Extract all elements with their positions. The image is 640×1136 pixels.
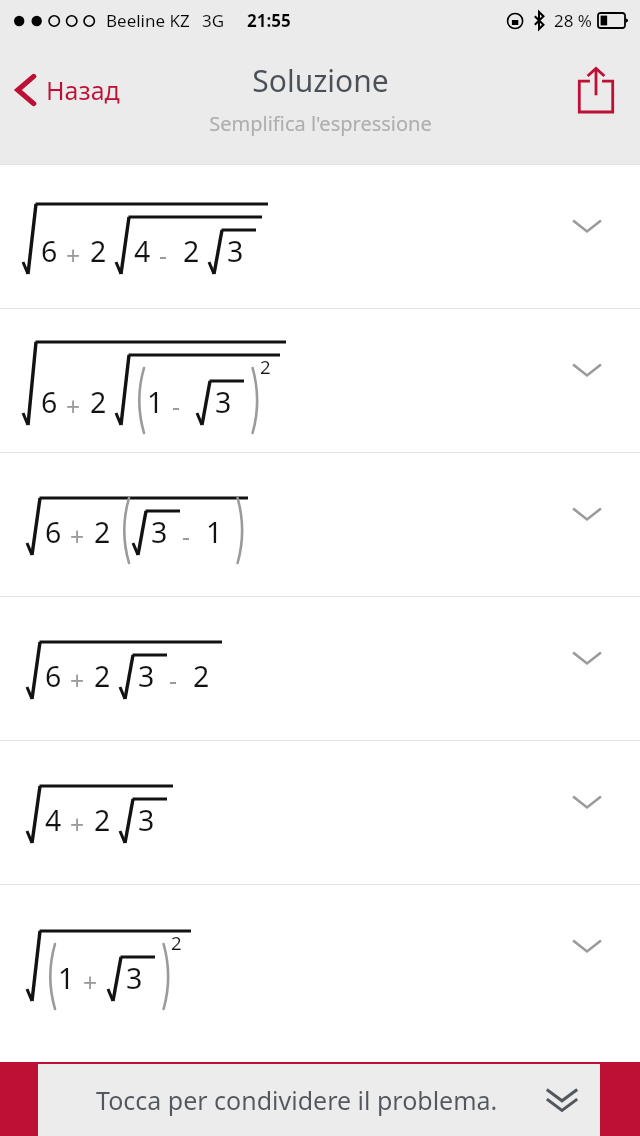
staticText: 21:55 [247,9,291,32]
staticText: + [66,238,81,272]
staticText: 6 [41,383,58,422]
staticText: + [66,389,81,423]
staticText: 6 [41,232,58,271]
button[interactable]: Share [568,62,624,118]
staticText: 1 [58,959,75,998]
staticText: 3 [126,959,143,998]
staticText: Назад [46,73,120,107]
button[interactable]: 6 [0,453,640,596]
staticText: 2 [90,383,107,422]
staticText: 4 [45,801,62,840]
button[interactable]: 6 [0,309,640,452]
staticText: 28 % [554,9,592,32]
staticText: + [70,663,85,697]
staticText: Beeline KZ [106,9,190,32]
button[interactable]: 4 [0,741,640,884]
staticText: 2 [94,801,111,840]
staticText: 3 [227,232,244,271]
staticText: 2 [171,930,182,955]
staticText: 6 [45,513,62,552]
staticText: + [70,807,85,841]
staticText: 6 [45,657,62,696]
staticText: - [169,663,177,697]
staticText: 3 [215,383,232,422]
button[interactable]: 6 [0,165,640,308]
staticText: Tocca per condividere il problema. [96,1083,498,1117]
staticText: + [70,519,85,553]
staticText: 3 [138,657,155,696]
staticText: 2 [193,657,210,696]
staticText: 3 [138,801,155,840]
staticText: 2 [94,657,111,696]
staticText: - [159,238,167,272]
button[interactable]: 6 [0,597,640,740]
staticText: + [83,965,98,999]
staticText: 3 [151,513,168,552]
button[interactable]: Tocca per condividere il problema. [0,1062,640,1136]
staticText: Semplifica l'espressione [209,110,432,137]
staticText: 2 [260,354,271,379]
staticText: 2 [94,513,111,552]
button[interactable]: Назад [0,62,130,118]
staticText: 1 [206,513,223,552]
button[interactable]: 1 [0,885,640,1042]
staticText: 2 [90,232,107,271]
staticText: Soluzione [252,60,389,101]
staticText: - [182,519,190,553]
staticText: - [172,389,180,423]
staticText: 1 [147,383,164,422]
staticText: 2 [183,232,200,271]
staticText: 3G [202,9,225,32]
staticText: 4 [134,232,151,271]
